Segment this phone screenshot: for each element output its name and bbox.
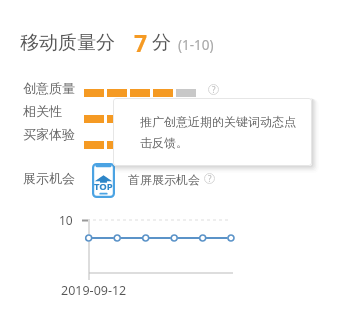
staticText: ? (212, 84, 216, 95)
staticText: 2019-09-12 (61, 282, 127, 299)
staticText: 分 (152, 31, 171, 55)
staticText: 创意质量 (23, 80, 75, 96)
staticText: (1-10) (178, 36, 214, 54)
button[interactable]: Help (208, 84, 219, 95)
staticText: ? (208, 173, 212, 184)
staticText: 相关性 (23, 103, 62, 119)
button[interactable]: Top display (92, 163, 115, 198)
staticText: TOP (94, 180, 113, 193)
staticText: 10 (59, 212, 73, 228)
staticText: 首屏展示机会 (128, 172, 200, 187)
button[interactable]: Help (204, 173, 215, 184)
staticText: 买家体验 (23, 126, 75, 142)
staticText: 推广创意近期的关键词动态点击反馈。 (140, 114, 300, 150)
staticText: 展示机会 (23, 170, 75, 186)
staticText: 移动质量分 (20, 31, 115, 55)
staticText: 7 (134, 27, 148, 58)
